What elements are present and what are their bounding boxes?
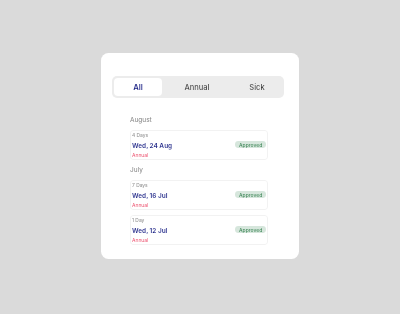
staticText: 7 Days <box>132 182 148 188</box>
staticText: Annual <box>184 83 210 92</box>
staticText: Approved <box>239 142 263 148</box>
button[interactable]: All <box>114 78 162 96</box>
staticText: Annual <box>132 152 149 158</box>
staticText: Wed, 16 Jul <box>132 192 168 200</box>
staticText: July <box>130 166 143 174</box>
staticText: Annual <box>132 202 149 208</box>
staticText: All <box>133 83 143 92</box>
staticText: 4 Days <box>132 132 149 138</box>
staticText: August <box>130 116 152 124</box>
button[interactable]: Sick <box>231 78 282 96</box>
staticText: Annual <box>132 237 149 243</box>
staticText: Approved <box>239 227 263 233</box>
staticText: Wed, 24 Aug <box>132 142 173 150</box>
staticText: Sick <box>249 83 265 92</box>
staticText: Approved <box>239 192 263 198</box>
staticText: 1 Day <box>132 217 145 223</box>
button[interactable]: 4 Days <box>130 130 268 160</box>
button[interactable]: Annual <box>166 78 227 96</box>
staticText: Wed, 12 Jul <box>132 227 168 235</box>
button[interactable]: 1 Day <box>130 215 268 245</box>
button[interactable]: 7 Days <box>130 180 268 210</box>
